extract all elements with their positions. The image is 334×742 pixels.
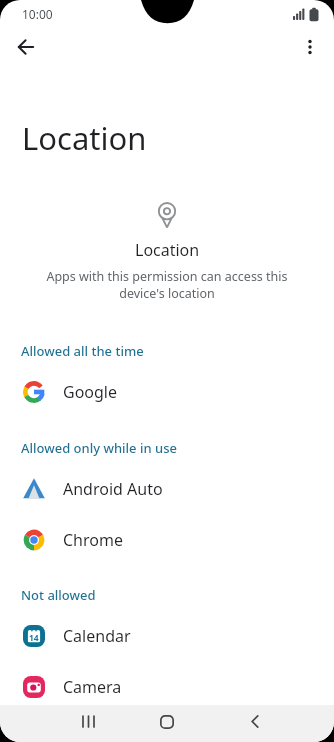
staticText: Allowed only while in use: [21, 439, 177, 457]
button[interactable]: Google: [0, 366, 334, 417]
staticText: Chrome: [63, 529, 123, 551]
staticText: 10:00: [22, 6, 53, 22]
staticText: Google: [63, 381, 118, 403]
staticText: Apps with this permission can access thi…: [0, 268, 334, 302]
staticText: Camera: [63, 676, 122, 698]
staticText: Not allowed: [21, 586, 96, 604]
staticText: 14: [29, 632, 39, 644]
button[interactable]: [143, 705, 191, 742]
button[interactable]: [6, 28, 46, 66]
staticText: Location: [22, 117, 147, 155]
button[interactable]: Android Auto: [0, 463, 334, 514]
staticText: Calendar: [63, 625, 131, 647]
staticText: Android Auto: [63, 478, 163, 500]
button[interactable]: Chrome: [0, 514, 334, 565]
button[interactable]: Camera: [0, 661, 334, 712]
button[interactable]: 14: [0, 610, 334, 661]
button[interactable]: [290, 28, 330, 66]
button[interactable]: [64, 705, 112, 742]
staticText: Allowed all the time: [21, 342, 144, 360]
staticText: Location: [135, 239, 200, 259]
button[interactable]: [231, 705, 279, 742]
